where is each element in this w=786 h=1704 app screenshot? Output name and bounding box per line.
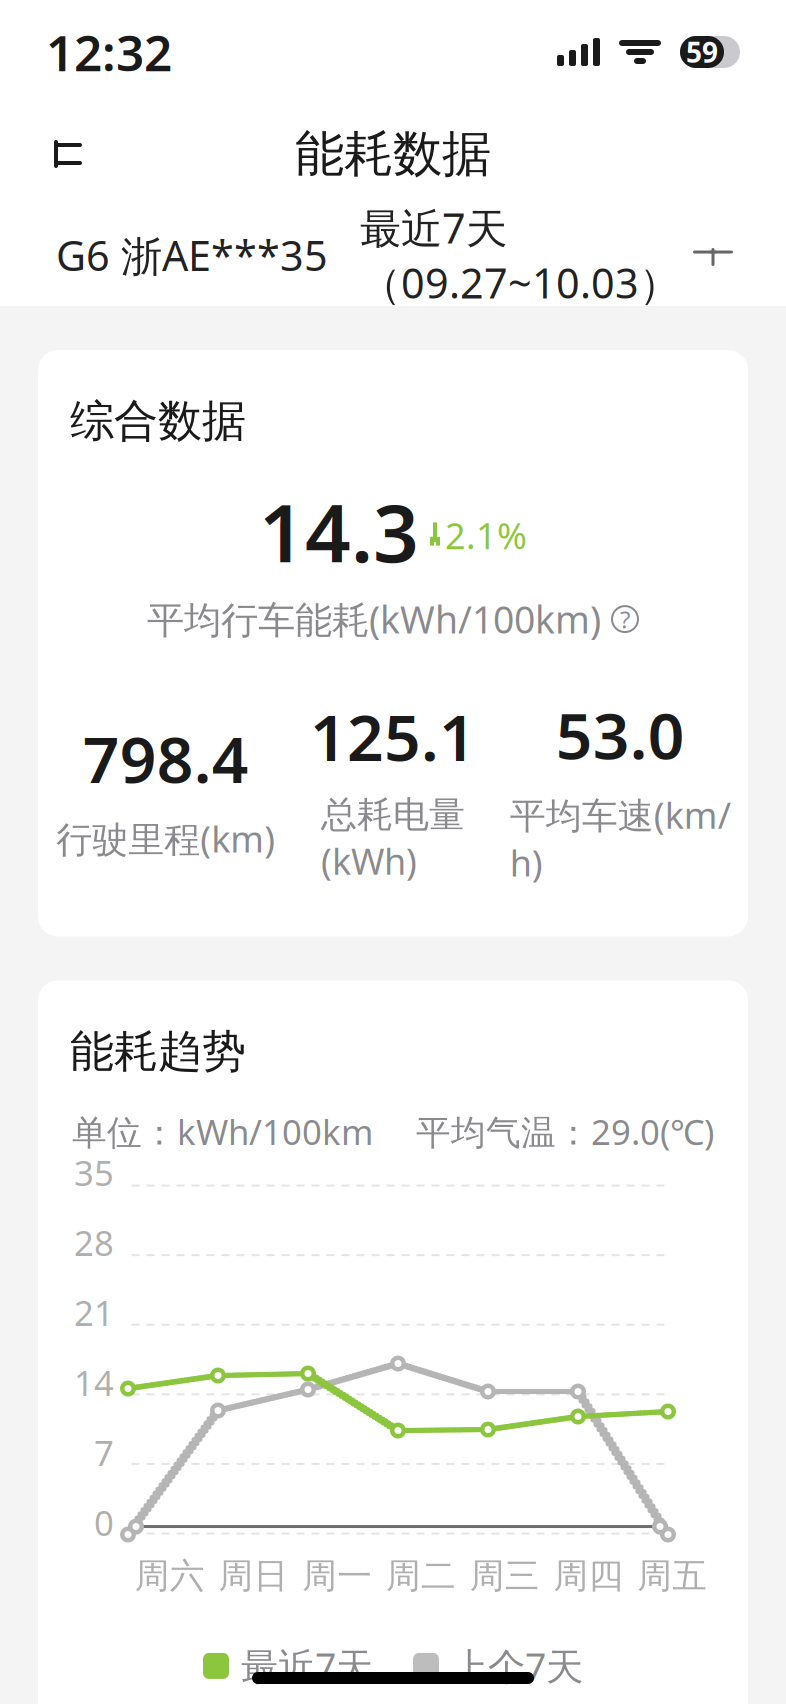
staticText: 14.3 [259,478,419,584]
staticText: 周二 [386,1554,456,1597]
staticText: 21 [74,1289,114,1335]
staticText: 59 [686,33,718,71]
staticText: 最近7天（09.27~10.03） [360,200,680,310]
staticText: 综合数据 [70,394,246,448]
staticText: 总耗电量(kWh) [321,793,465,885]
staticText: 周五 [637,1554,707,1597]
staticText: 7 [94,1429,114,1475]
staticText: 798.4 [83,716,249,801]
staticText: 行驶里程(km) [56,815,275,863]
staticText: 0 [94,1499,114,1545]
staticText: 周六 [135,1554,205,1597]
staticText: 14 [74,1359,114,1405]
staticText: ? [620,603,630,635]
staticText: 最近7天 [241,1641,373,1691]
button[interactable]: G6 浙AE***35 [56,215,328,294]
button[interactable]: 最近7天（09.27~10.03） [360,188,730,322]
staticText: 周四 [553,1554,623,1597]
staticText: 周日 [219,1554,289,1597]
staticText: 2.1% [445,511,527,559]
staticText: 能耗数据 [295,124,491,184]
staticText: 12:32 [46,19,172,85]
staticText: 28 [74,1219,114,1265]
staticText: 周一 [302,1554,372,1597]
staticText: 53.0 [556,692,685,777]
staticText: 125.1 [310,694,476,779]
staticText: G6 浙AE***35 [56,227,328,282]
staticText: 平均行车能耗(kWh/100km) [147,594,601,644]
staticText: 平均车速(km/h) [510,791,731,886]
staticText: 能耗趋势 [70,1024,246,1078]
button[interactable]: 返回 [26,111,112,197]
staticText: 35 [74,1149,114,1195]
staticText: 单位：kWh/100km [72,1108,373,1154]
staticText: 平均气温：29.0(℃) [416,1108,714,1154]
staticText: 上个7天 [451,1641,583,1691]
staticText: 周三 [470,1554,540,1597]
